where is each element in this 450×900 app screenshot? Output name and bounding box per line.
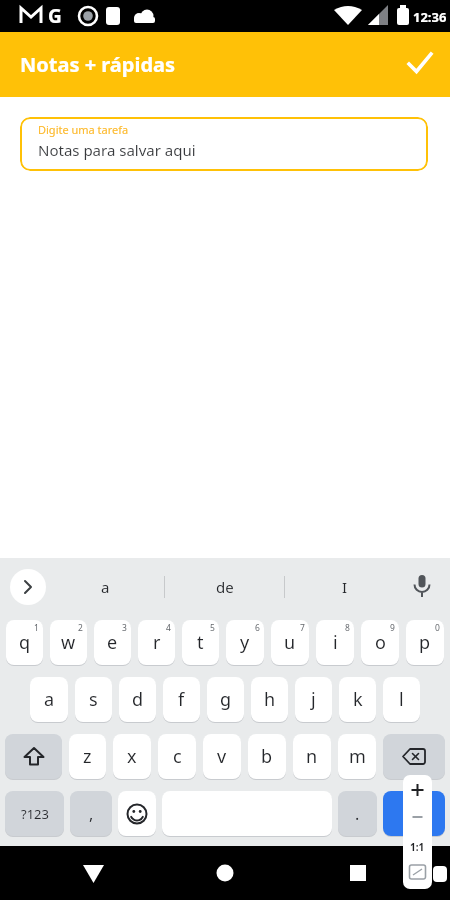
staticText: Digite uma tarefa [38,122,129,137]
button[interactable]: d [119,677,156,722]
staticText: k [353,687,363,712]
button[interactable]: ?123 [5,791,64,836]
staticText: h [264,687,276,712]
button[interactable]: n [293,734,331,779]
staticText: 1 [34,622,39,634]
staticText: j [311,687,316,712]
button[interactable]: i [316,620,354,665]
staticText: 4 [166,622,171,634]
staticText: o [375,630,386,655]
staticText: p [419,630,431,655]
button[interactable]: , [70,791,112,836]
staticText: w [61,630,76,655]
button[interactable] [335,851,379,895]
button[interactable]: a [46,558,164,615]
button[interactable]: a [30,677,68,722]
staticText: f [178,687,185,712]
button[interactable]: Digite uma tarefa [20,117,428,171]
staticText: s [89,687,98,712]
staticText: b [261,744,273,769]
staticText: z [83,744,92,769]
button[interactable] [383,791,445,836]
staticText: v [217,744,227,769]
staticText: m [349,744,366,769]
button[interactable] [403,803,432,831]
button[interactable] [403,860,432,889]
staticText: 7 [300,622,305,634]
staticText: . [355,803,360,825]
button[interactable]: k [339,677,376,722]
button[interactable] [406,571,438,603]
staticText: de [216,577,234,597]
button[interactable]: z [69,734,106,779]
button[interactable] [10,569,46,605]
button[interactable]: h [251,677,288,722]
staticText: a [44,687,55,712]
button[interactable]: o [361,620,399,665]
staticText: y [240,630,250,655]
button[interactable] [403,775,432,803]
staticText: 0 [435,622,440,634]
button[interactable]: f [163,677,200,722]
staticText: I [342,577,348,597]
staticText: 2 [78,622,83,634]
staticText: 6 [255,622,260,634]
staticText: q [19,630,31,655]
staticText: a [101,577,110,597]
button[interactable]: j [295,677,332,722]
button[interactable]: g [207,677,244,722]
button[interactable]: x [113,734,151,779]
button[interactable] [403,831,432,860]
staticText: e [107,630,118,655]
staticText: l [399,687,404,712]
button[interactable] [398,43,442,87]
staticText: g [220,687,232,712]
staticText: 8 [345,622,350,634]
button[interactable]: r [138,620,175,665]
button[interactable] [118,791,156,836]
staticText: 5 [210,622,215,634]
staticText: Notas + rápidas [20,51,176,78]
staticText: Notas para salvar aqui [38,140,196,160]
button[interactable]: w [50,620,87,665]
button[interactable] [383,734,445,779]
button[interactable] [71,851,115,895]
button[interactable]: u [271,620,309,665]
staticText: ?123 [21,805,49,823]
button[interactable]: t [182,620,219,665]
button[interactable]: I [285,558,404,615]
staticText: 1:1 [410,840,425,854]
staticText: n [306,744,318,769]
staticText: G [48,3,62,29]
staticText: u [284,630,296,655]
staticText: r [153,630,161,655]
staticText: x [127,744,137,769]
button[interactable]: . [338,791,377,836]
staticText: t [197,630,204,655]
button[interactable]: y [226,620,264,665]
button[interactable]: s [75,677,112,722]
staticText: , [89,803,94,825]
button[interactable]: v [203,734,241,779]
staticText: 12:36 [413,8,447,26]
button[interactable]: l [383,677,420,722]
staticText: i [333,630,338,655]
button[interactable]: b [248,734,286,779]
button[interactable]: q [6,620,43,665]
staticText: c [173,744,182,769]
button[interactable]: de [165,558,284,615]
button[interactable]: c [158,734,196,779]
staticText: 9 [390,622,395,634]
button[interactable]: m [338,734,376,779]
staticText: d [132,687,144,712]
button[interactable]: p [406,620,444,665]
button[interactable] [5,734,62,779]
button[interactable]: e [94,620,131,665]
button[interactable] [203,851,247,895]
staticText: 3 [122,622,127,634]
